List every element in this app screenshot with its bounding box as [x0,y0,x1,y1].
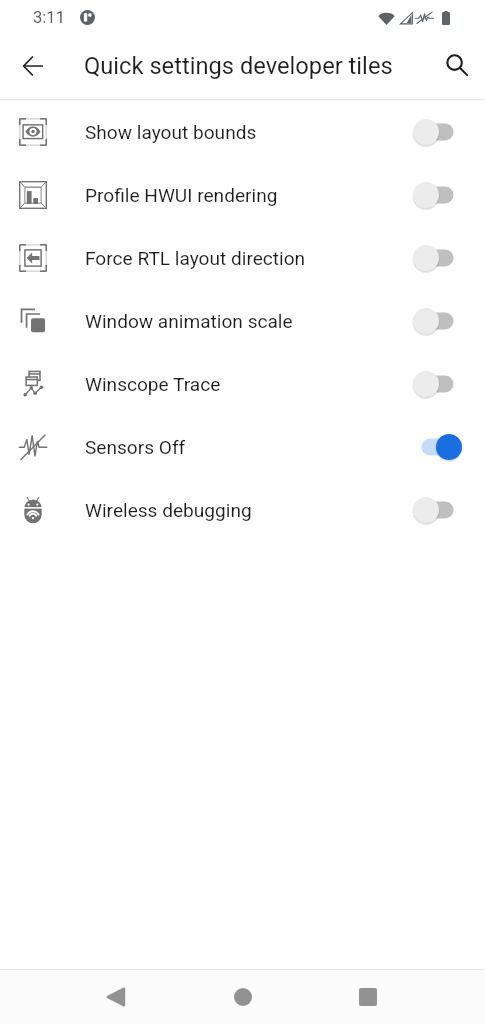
staticText: 3:11 [33,8,65,27]
button[interactable]: Window animation scale [0,289,485,352]
button[interactable]: Force RTL layout direction, off [413,241,462,275]
button[interactable]: Force RTL layout direction [0,226,485,289]
button[interactable]: Profile HWUI rendering [0,163,485,226]
staticText: Winscope Trace [85,373,221,395]
button[interactable]: Sensors Off [0,415,485,478]
staticText: Window animation scale [85,310,293,332]
button[interactable]: Profile HWUI rendering, off [413,178,462,212]
staticText: Show layout bounds [85,121,257,143]
staticText: Profile HWUI rendering [85,184,278,206]
button[interactable]: Home [213,970,273,1024]
staticText: Wireless debugging [85,499,252,521]
staticText: Force RTL layout direction [85,247,306,269]
staticText: Quick settings developer tiles [84,52,393,80]
staticText: Sensors Off [85,436,186,458]
button[interactable]: Recents [338,970,398,1024]
button[interactable]: Show layout bounds [0,100,485,163]
button[interactable]: Back [9,42,57,90]
button[interactable]: Winscope Trace [0,352,485,415]
button[interactable]: Window animation scale, off [413,304,462,338]
button[interactable]: Search [433,41,481,89]
button[interactable]: Show layout bounds, off [413,115,462,149]
button[interactable]: Sensors Off, on [413,430,462,464]
button[interactable]: Winscope Trace, off [413,367,462,401]
button[interactable]: Wireless debugging [0,478,485,541]
button[interactable]: Wireless debugging, off [413,493,462,527]
button[interactable]: Back [86,970,146,1024]
